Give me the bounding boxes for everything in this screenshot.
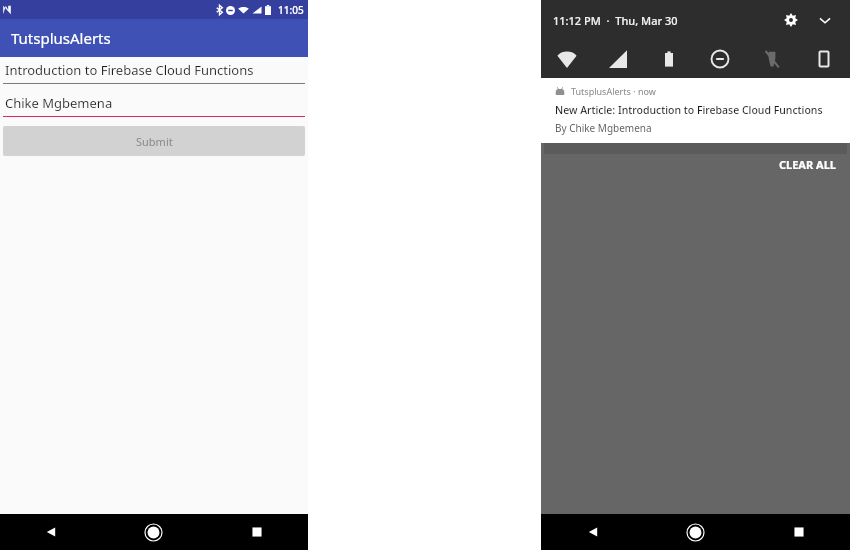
staticText: TutsplusAlerts · now [571, 85, 656, 97]
button[interactable]: Recent apps [747, 514, 850, 550]
button[interactable]: Chike Mgbemena [3, 94, 305, 117]
button[interactable]: Back [541, 514, 644, 550]
button[interactable]: Recent apps [205, 514, 308, 550]
button[interactable]: Back [0, 514, 102, 550]
staticText: 11:05 [278, 3, 304, 17]
button[interactable]: Wi-Fi [541, 40, 592, 78]
staticText: By Chike Mgbemena [555, 121, 652, 135]
button[interactable]: Settings [778, 7, 804, 33]
button[interactable]: Submit [3, 126, 305, 156]
staticText: TutsplusAlerts [11, 28, 111, 48]
button[interactable]: CLEAR ALL [779, 157, 836, 172]
button[interactable]: Do not disturb [694, 40, 746, 78]
staticText: Introduction to Firebase Cloud Functions [5, 61, 254, 79]
button[interactable]: Flashlight off [746, 40, 798, 78]
staticText: 11:12 PM · Thu, Mar 30 [553, 13, 678, 28]
button[interactable]: Introduction to Firebase Cloud Functions [3, 61, 305, 84]
staticText: CLEAR ALL [779, 157, 836, 172]
staticText: Chike Mgbemena [5, 94, 113, 112]
button[interactable]: Battery [643, 40, 694, 78]
staticText: Submit [136, 134, 173, 149]
staticText: New Article: Introduction to Firebase Cl… [555, 103, 823, 117]
button[interactable]: Auto rotate [798, 40, 850, 78]
button[interactable]: TutsplusAlerts · now [541, 78, 850, 143]
button[interactable]: Home [102, 514, 205, 550]
button[interactable]: Expand quick settings [812, 7, 838, 33]
button[interactable]: Mobile data [592, 40, 643, 78]
button[interactable]: Home [644, 514, 747, 550]
